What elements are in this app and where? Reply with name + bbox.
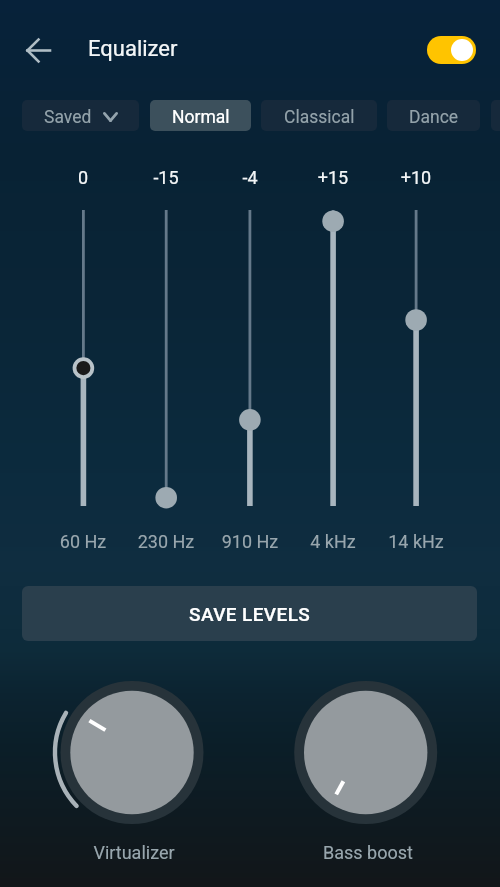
staticText: +10: [376, 167, 456, 188]
button[interactable]: Normal: [150, 100, 251, 131]
staticText: Saved: [44, 107, 92, 128]
staticText: -4: [210, 167, 290, 188]
staticText: 0: [43, 167, 123, 188]
button[interactable]: Equalizer on: [427, 36, 476, 64]
staticText: 14 kHz: [371, 531, 461, 552]
staticText: Dance: [409, 107, 459, 128]
button[interactable]: Virtualizer knob: [42, 662, 222, 842]
staticText: -15: [126, 167, 206, 188]
staticText: Classical: [284, 107, 355, 128]
staticText: 4 kHz: [288, 531, 378, 552]
staticText: 60 Hz: [38, 531, 128, 552]
staticText: 230 Hz: [121, 531, 211, 552]
staticText: Virtualizer: [54, 842, 214, 863]
button[interactable]: Dance: [387, 100, 480, 131]
button[interactable]: Saved: [22, 100, 139, 131]
staticText: Equalizer: [88, 36, 178, 62]
button[interactable]: Back: [20, 32, 57, 69]
staticText: +15: [293, 167, 373, 188]
staticText: Bass boost: [288, 842, 448, 863]
staticText: 910 Hz: [205, 531, 295, 552]
button[interactable]: Classical: [261, 100, 377, 131]
staticText: Normal: [172, 107, 230, 128]
staticText: SAVE LEVELS: [189, 603, 311, 625]
button[interactable]: Bass boost knob: [275, 662, 455, 842]
button[interactable]: SAVE LEVELS: [22, 586, 477, 641]
